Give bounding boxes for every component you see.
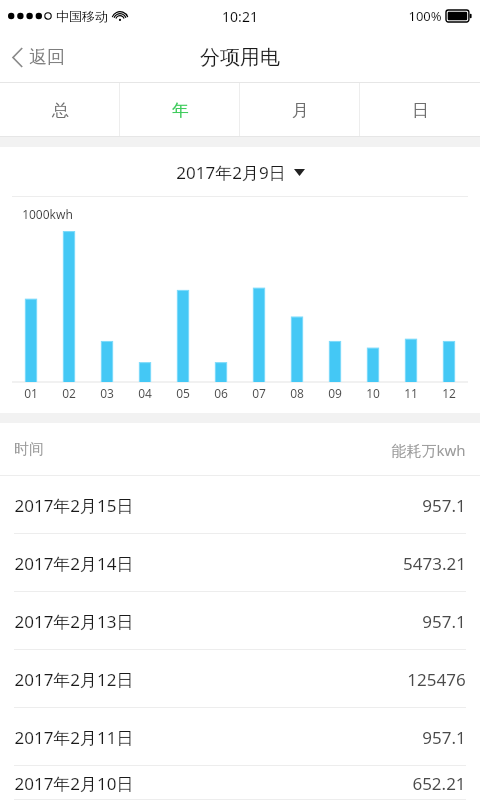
staticText: 日 (412, 100, 429, 121)
staticText: 能耗万kwh (391, 440, 466, 460)
staticText: 09 (328, 385, 342, 401)
staticText: 03 (100, 385, 114, 401)
staticText: 年 (172, 100, 189, 121)
staticText: 08 (290, 385, 304, 401)
staticText: 2017年2月15日 (14, 494, 134, 517)
staticText: 1000kwh (22, 206, 73, 222)
staticText: 2017年2月11日 (14, 726, 134, 749)
staticText: 12 (442, 385, 456, 401)
staticText: 07 (252, 385, 266, 401)
button[interactable]: 2017年2月11日 (0, 708, 480, 766)
staticText: 中国移动 (56, 8, 108, 24)
staticText: 时间 (14, 440, 44, 459)
button[interactable]: 2017年2月10日 (0, 766, 480, 800)
staticText: 2017年2月9日 (176, 161, 286, 184)
staticText: 分项用电 (200, 45, 280, 70)
staticText: 2017年2月14日 (14, 552, 134, 575)
button[interactable]: 月 (240, 83, 360, 137)
staticText: 652.21 (412, 772, 466, 795)
button[interactable]: 2017年2月9日 (164, 155, 317, 190)
button[interactable]: 总 (0, 83, 120, 137)
button[interactable]: 年 (120, 83, 240, 137)
staticText: 04 (138, 385, 152, 401)
staticText: 05 (176, 385, 190, 401)
staticText: 957.1 (422, 726, 466, 749)
staticText: 月 (292, 100, 309, 121)
button[interactable]: 日 (360, 83, 480, 137)
button[interactable]: 2017年2月15日 (0, 476, 480, 534)
staticText: 01 (24, 385, 38, 401)
button[interactable]: 2017年2月12日 (0, 650, 480, 708)
staticText: 06 (214, 385, 228, 401)
staticText: 5473.21 (403, 552, 466, 575)
staticText: 11 (404, 385, 418, 401)
staticText: 10:21 (222, 7, 258, 26)
staticText: 2017年2月12日 (14, 668, 134, 691)
button[interactable]: 返回 (0, 32, 79, 83)
staticText: 02 (62, 385, 76, 401)
staticText: 125476 (407, 668, 466, 691)
staticText: 100% (408, 7, 442, 25)
staticText: 2017年2月10日 (14, 772, 134, 795)
staticText: 10 (366, 385, 380, 401)
staticText: 总 (52, 100, 69, 121)
button[interactable]: 2017年2月14日 (0, 534, 480, 592)
button[interactable]: 2017年2月13日 (0, 592, 480, 650)
staticText: 返回 (29, 46, 65, 69)
staticText: 2017年2月13日 (14, 610, 134, 633)
staticText: 957.1 (422, 494, 466, 517)
staticText: 957.1 (422, 610, 466, 633)
